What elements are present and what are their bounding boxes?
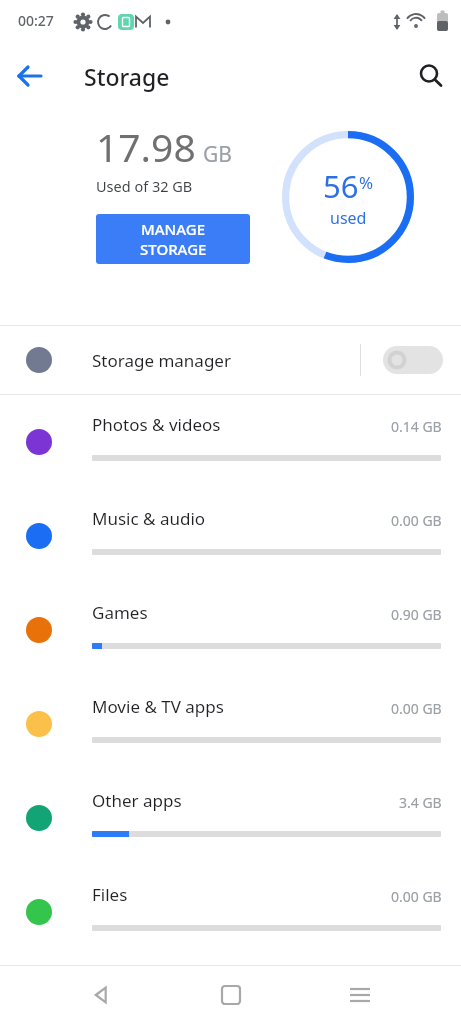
staticText: Games — [92, 601, 148, 624]
staticText: used — [330, 207, 367, 229]
staticText: % — [359, 171, 374, 194]
staticText: Used of 32 GB — [96, 176, 193, 196]
button[interactable]: Back — [73, 967, 129, 1023]
button[interactable]: Music & audio — [0, 489, 461, 583]
staticText: 0.00 GB — [391, 887, 442, 906]
button[interactable]: Photos & videos — [0, 395, 461, 489]
staticText: Movie & TV apps — [92, 695, 224, 718]
button[interactable]: Files — [0, 865, 461, 959]
staticText: 56 — [323, 165, 359, 207]
button[interactable]: Storage manager toggle — [383, 346, 443, 374]
staticText: 3.4 GB — [399, 793, 442, 812]
staticText: 17.98 — [96, 120, 196, 173]
button[interactable]: Recent apps — [332, 967, 388, 1023]
staticText: Music & audio — [92, 507, 206, 530]
staticText: 00:27 — [18, 11, 54, 30]
staticText: GB — [203, 140, 232, 169]
staticText: 0.14 GB — [391, 417, 442, 436]
staticText: MANAGE — [141, 219, 206, 239]
staticText: 0.00 GB — [391, 699, 442, 718]
staticText: 0.00 GB — [391, 511, 442, 530]
button[interactable]: Other apps — [0, 771, 461, 865]
staticText: STORAGE — [140, 239, 207, 259]
staticText: Storage — [84, 61, 170, 92]
staticText: Files — [92, 883, 128, 906]
staticText: 0.90 GB — [391, 605, 442, 624]
button[interactable]: Back — [6, 52, 54, 100]
button[interactable]: Games — [0, 583, 461, 677]
staticText: Other apps — [92, 789, 182, 812]
button[interactable]: Search — [407, 52, 455, 100]
staticText: Photos & videos — [92, 413, 221, 436]
button[interactable]: Movie & TV apps — [0, 677, 461, 771]
staticText: Storage manager — [92, 349, 231, 372]
button[interactable]: Storage manager — [0, 326, 461, 394]
button[interactable]: Home — [203, 967, 259, 1023]
button[interactable]: MANAGE — [96, 214, 250, 264]
